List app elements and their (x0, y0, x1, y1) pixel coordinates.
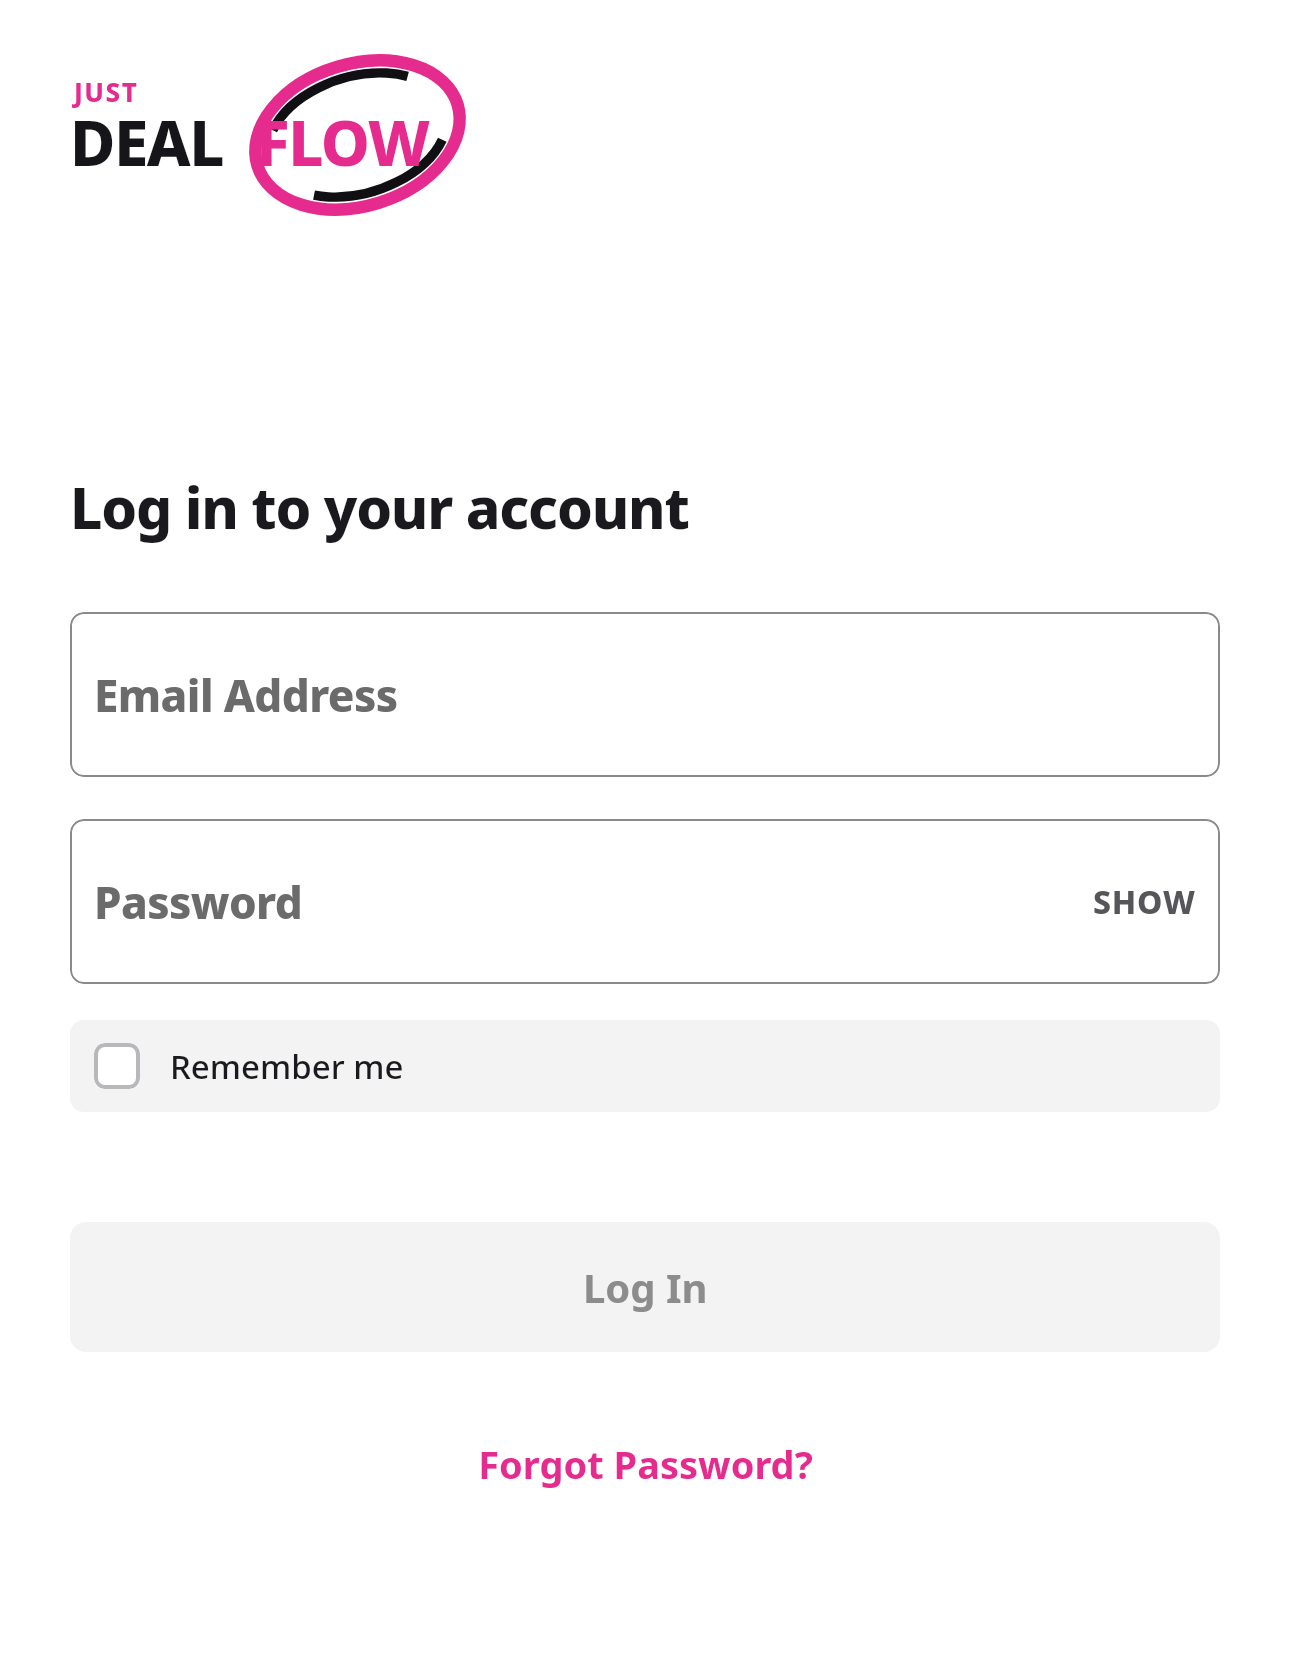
staticText: Log in to your account (70, 468, 689, 546)
staticText: Remember me (170, 1044, 404, 1089)
button[interactable]: SHOW (1093, 880, 1196, 924)
button[interactable]: Log In (70, 1222, 1220, 1352)
staticText: Log In (583, 1260, 708, 1314)
button[interactable]: Forgot Password? (0, 1438, 1290, 1490)
button[interactable]: Email Address input (70, 612, 1220, 777)
staticText: JUST (74, 74, 139, 109)
staticText: DEAL (70, 100, 224, 184)
staticText: Forgot Password? (478, 1438, 813, 1490)
staticText: Password (94, 872, 303, 932)
staticText: Email Address (94, 665, 398, 725)
button[interactable]: Remember me (70, 1020, 1220, 1112)
button[interactable]: Password input (70, 819, 1220, 984)
staticText: FLOW (256, 100, 429, 184)
